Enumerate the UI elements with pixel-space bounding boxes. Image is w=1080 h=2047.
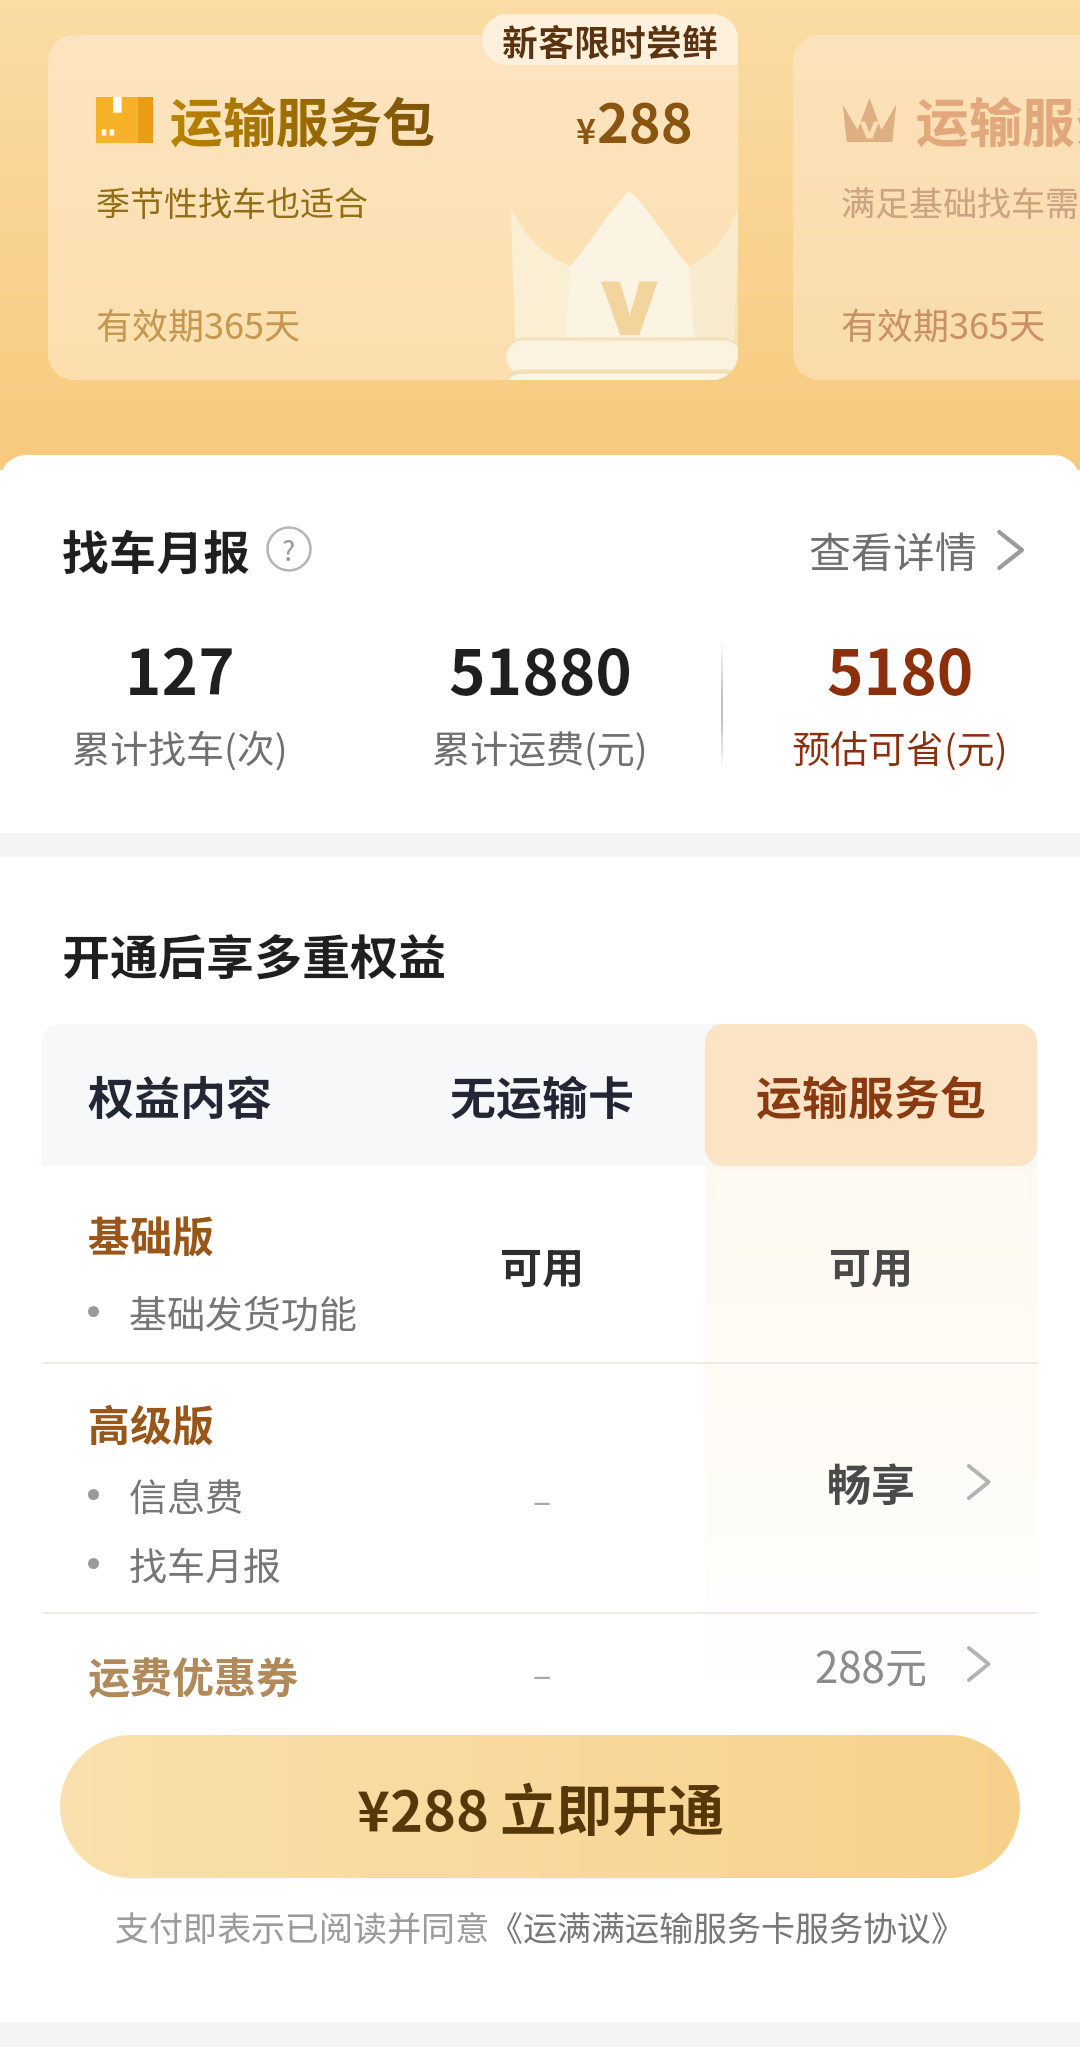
button[interactable]: ¥288 [60, 1735, 1020, 1878]
staticText: ? [282, 529, 296, 570]
staticText: 新客限时尝鲜 [502, 14, 719, 65]
staticText: 有效期365天 [841, 297, 1045, 349]
staticText: 立即开通 [500, 1766, 724, 1847]
staticText: 信息费 [129, 1467, 244, 1522]
staticText: 查看详情 [809, 519, 978, 580]
button[interactable]: 无运输卡 [362, 1024, 722, 1166]
staticText: 季节性找车也适合 [96, 177, 368, 226]
button[interactable]: 畅享 [705, 1447, 1037, 1517]
staticText: – [533, 1475, 552, 1524]
staticText: 基础版 [88, 1203, 215, 1264]
button[interactable]: 查看详情 [809, 519, 1024, 580]
button[interactable]: 《运满满运输服务卡服务协议》 [489, 1902, 965, 1951]
staticText: 可用 [829, 1234, 914, 1295]
staticText: 找车月报 [62, 515, 250, 583]
staticText: 高级版 [88, 1392, 215, 1453]
staticText: 满足基础找车需求 [841, 177, 1080, 226]
staticText: 找车月报 [129, 1536, 282, 1591]
staticText: 运输服务包 [756, 1062, 986, 1129]
button[interactable]: 运输服务包 [705, 1024, 1037, 1166]
button[interactable]: 运输服务包 [48, 35, 738, 380]
staticText: 51880 [449, 623, 632, 713]
staticText: 288 [597, 80, 693, 158]
staticText: 开通后享多重权益 [62, 919, 447, 989]
staticText: 畅享 [827, 1450, 915, 1514]
staticText: 累计找车(次) [72, 719, 288, 774]
staticText: 288元 [815, 1634, 927, 1695]
button[interactable]: 288元 [705, 1629, 1037, 1699]
staticText: 可用 [500, 1234, 585, 1295]
button[interactable]: 帮助 [266, 526, 312, 572]
staticText: 5180 [827, 623, 974, 713]
staticText: 权益内容 [88, 1062, 272, 1129]
staticText: 累计运费(元) [432, 719, 648, 774]
staticText: ¥ [576, 105, 597, 154]
staticText: 运输服务包 [170, 81, 435, 158]
staticText: 基础发货功能 [129, 1284, 358, 1339]
staticText: – [533, 1649, 552, 1698]
staticText: ¥288 [357, 1766, 490, 1847]
staticText: 有效期365天 [96, 297, 300, 349]
staticText: 预估可省(元) [792, 719, 1008, 774]
staticText: 无运输卡 [450, 1062, 634, 1129]
staticText: 运费优惠券 [88, 1644, 299, 1705]
staticText: 支付即表示已阅读并同意 [115, 1902, 489, 1951]
button[interactable]: 运输服务卡 [793, 35, 1080, 380]
staticText: 运输服务卡 [916, 81, 1080, 158]
staticText: 127 [125, 623, 235, 713]
